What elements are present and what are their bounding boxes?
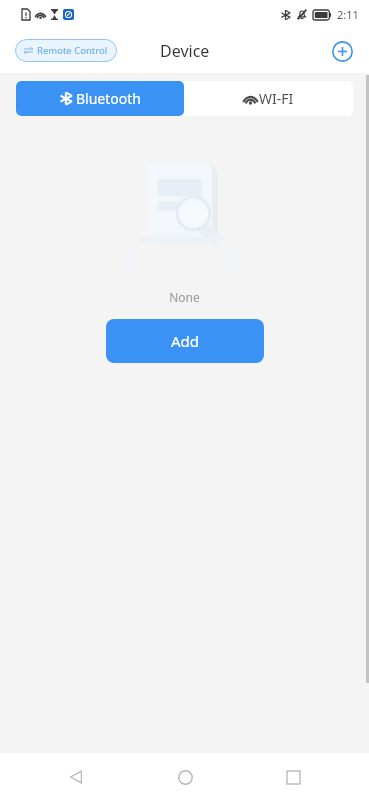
button[interactable]: Recent apps xyxy=(275,759,311,795)
staticText: Device xyxy=(160,40,210,62)
staticText: Add xyxy=(171,331,200,351)
button[interactable]: Bluetooth xyxy=(16,81,184,116)
staticText: 2:11 xyxy=(337,7,359,22)
staticText: WI-FI xyxy=(259,89,294,108)
staticText: None xyxy=(0,289,369,305)
button[interactable]: Add device xyxy=(326,35,358,67)
button[interactable]: WI-FI xyxy=(184,81,353,116)
button[interactable]: Remote Control xyxy=(15,39,117,62)
staticText: Bluetooth xyxy=(76,89,141,108)
staticText: Remote Control xyxy=(37,44,108,57)
button[interactable]: Back xyxy=(58,759,94,795)
button[interactable]: Add xyxy=(106,319,264,363)
button[interactable]: Home xyxy=(167,759,203,795)
